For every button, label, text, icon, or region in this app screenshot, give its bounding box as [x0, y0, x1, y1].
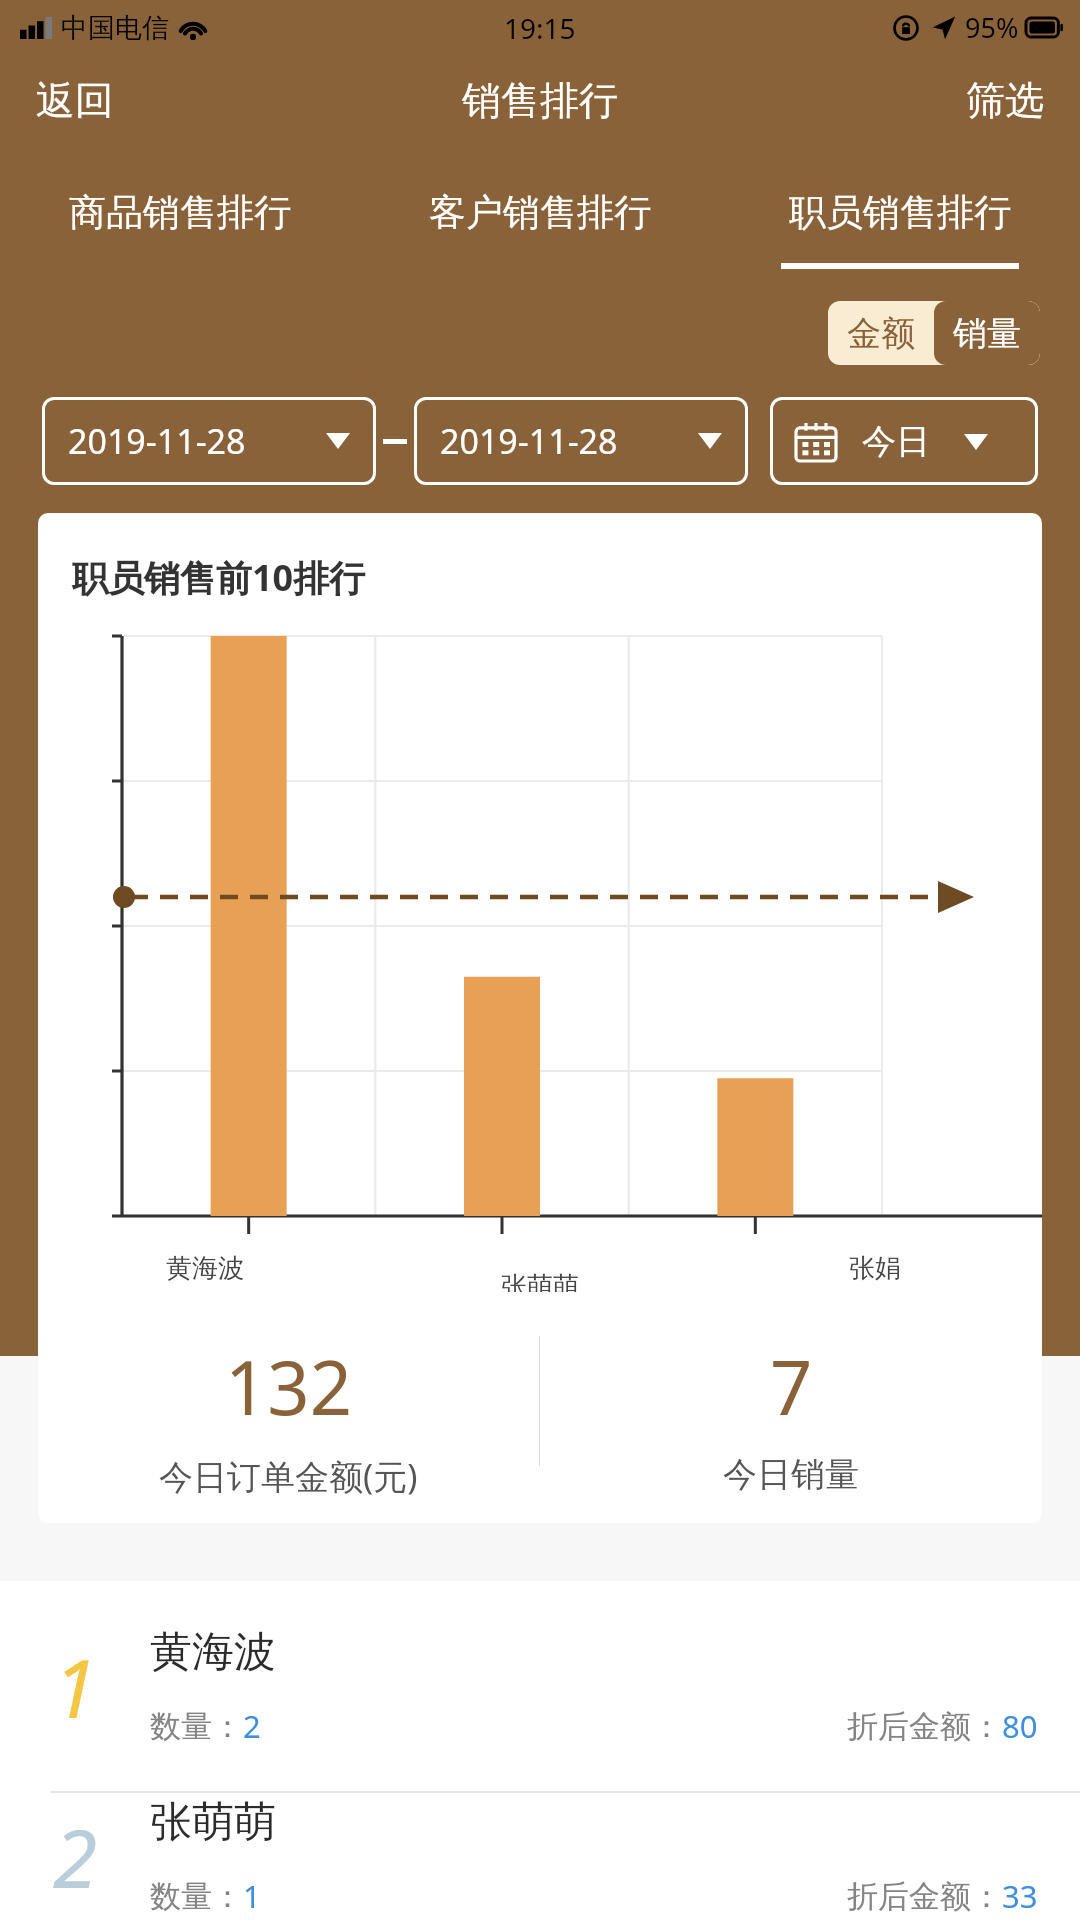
staticText: 筛选: [966, 76, 1044, 125]
button[interactable]: 金额: [828, 301, 934, 365]
button[interactable]: 2: [0, 1793, 1080, 1920]
staticText: 2019-11-28: [440, 418, 618, 464]
staticText: 7: [770, 1336, 813, 1437]
button[interactable]: 销量: [934, 301, 1040, 365]
staticText: 张萌萌: [150, 1796, 276, 1849]
staticText: 今日订单金额(元): [159, 1453, 418, 1499]
staticText: 1: [243, 1875, 261, 1917]
button[interactable]: 2019-11-28: [414, 397, 748, 485]
staticText: 1: [53, 1632, 98, 1741]
staticText: 销量: [953, 312, 1021, 355]
staticText: 2: [53, 1802, 98, 1911]
staticText: 黄海波: [166, 1252, 244, 1285]
button[interactable]: 2019-11-28: [42, 397, 376, 485]
staticText: 客户销售排行: [429, 189, 651, 236]
button[interactable]: 客户销售排行: [360, 145, 720, 290]
staticText: 商品销售排行: [69, 189, 291, 236]
staticText: 33: [1002, 1875, 1038, 1917]
staticText: 95%: [965, 9, 1019, 46]
button[interactable]: 商品销售排行: [0, 145, 360, 290]
staticText: 19:15: [504, 9, 576, 47]
staticText: 张萌萌: [501, 1270, 579, 1292]
button[interactable]: 返回: [0, 62, 150, 139]
staticText: 2019-11-28: [68, 418, 246, 464]
staticText: 数量：: [150, 1877, 243, 1916]
staticText: 职员销售排行: [789, 189, 1011, 236]
staticText: 张娟: [849, 1252, 901, 1285]
staticText: 折后金额：: [847, 1877, 1002, 1916]
staticText: 黄海波: [150, 1626, 276, 1679]
staticText: 132: [225, 1336, 352, 1437]
staticText: 职员销售前10排行: [72, 553, 366, 602]
staticText: 数量：: [150, 1707, 243, 1746]
staticText: 销售排行: [462, 76, 618, 125]
staticText: 今日销量: [723, 1453, 859, 1496]
button[interactable]: 筛选: [930, 62, 1080, 139]
button[interactable]: 职员销售排行: [720, 145, 1080, 290]
staticText: 返回: [36, 76, 114, 125]
staticText: 金额: [847, 312, 915, 355]
staticText: 今日: [862, 420, 930, 463]
staticText: 2: [243, 1705, 261, 1747]
staticText: 中国电信: [61, 11, 169, 45]
button[interactable]: 1: [0, 1581, 1080, 1791]
staticText: 折后金额：: [847, 1707, 1002, 1746]
button[interactable]: 今日: [770, 397, 1038, 485]
staticText: 80: [1002, 1705, 1038, 1747]
